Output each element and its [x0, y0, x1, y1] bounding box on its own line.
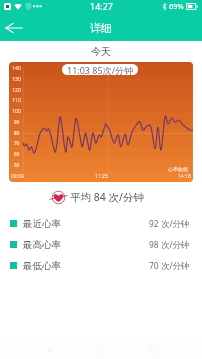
staticText: 69% — [169, 1, 184, 11]
staticText: 最高心率 — [23, 239, 61, 251]
staticText: 详细 — [90, 21, 112, 35]
staticText: 100 — [10, 108, 23, 115]
button[interactable]: 最低心率 — [0, 255, 202, 276]
staticText: 最低心率 — [23, 260, 61, 272]
staticText: 11:25 — [95, 173, 108, 180]
staticText: 最近心率 — [23, 218, 61, 230]
staticText: 50 — [10, 162, 23, 169]
staticText: 11:03 85次/分钟 — [67, 64, 133, 75]
staticText: 09:09 — [11, 173, 24, 180]
staticText: 80 — [10, 130, 23, 137]
staticText: 14:27 — [90, 0, 114, 12]
staticText: 心率曲线 — [168, 166, 188, 172]
staticText: 今天 — [91, 45, 111, 58]
staticText: 70 次/分钟 — [149, 260, 190, 272]
staticText: 60 — [10, 151, 23, 158]
staticText: 90 — [10, 119, 23, 126]
staticText: 14:16 — [178, 173, 191, 180]
staticText: 平均 84 次/分钟 — [70, 190, 144, 204]
staticText: 110 — [10, 97, 23, 104]
staticText: 120 — [10, 87, 23, 94]
button[interactable]: 最高心率 — [0, 234, 202, 255]
button[interactable]: 最近心率 — [0, 213, 202, 234]
button[interactable]: Back — [45, 347, 52, 354]
button[interactable]: Back — [3, 17, 25, 39]
staticText: 98 次/分钟 — [149, 239, 190, 251]
staticText: 140 — [10, 65, 23, 72]
staticText: 70 — [10, 140, 23, 147]
staticText: 92 次/分钟 — [149, 218, 190, 230]
staticText: 130 — [10, 76, 23, 83]
